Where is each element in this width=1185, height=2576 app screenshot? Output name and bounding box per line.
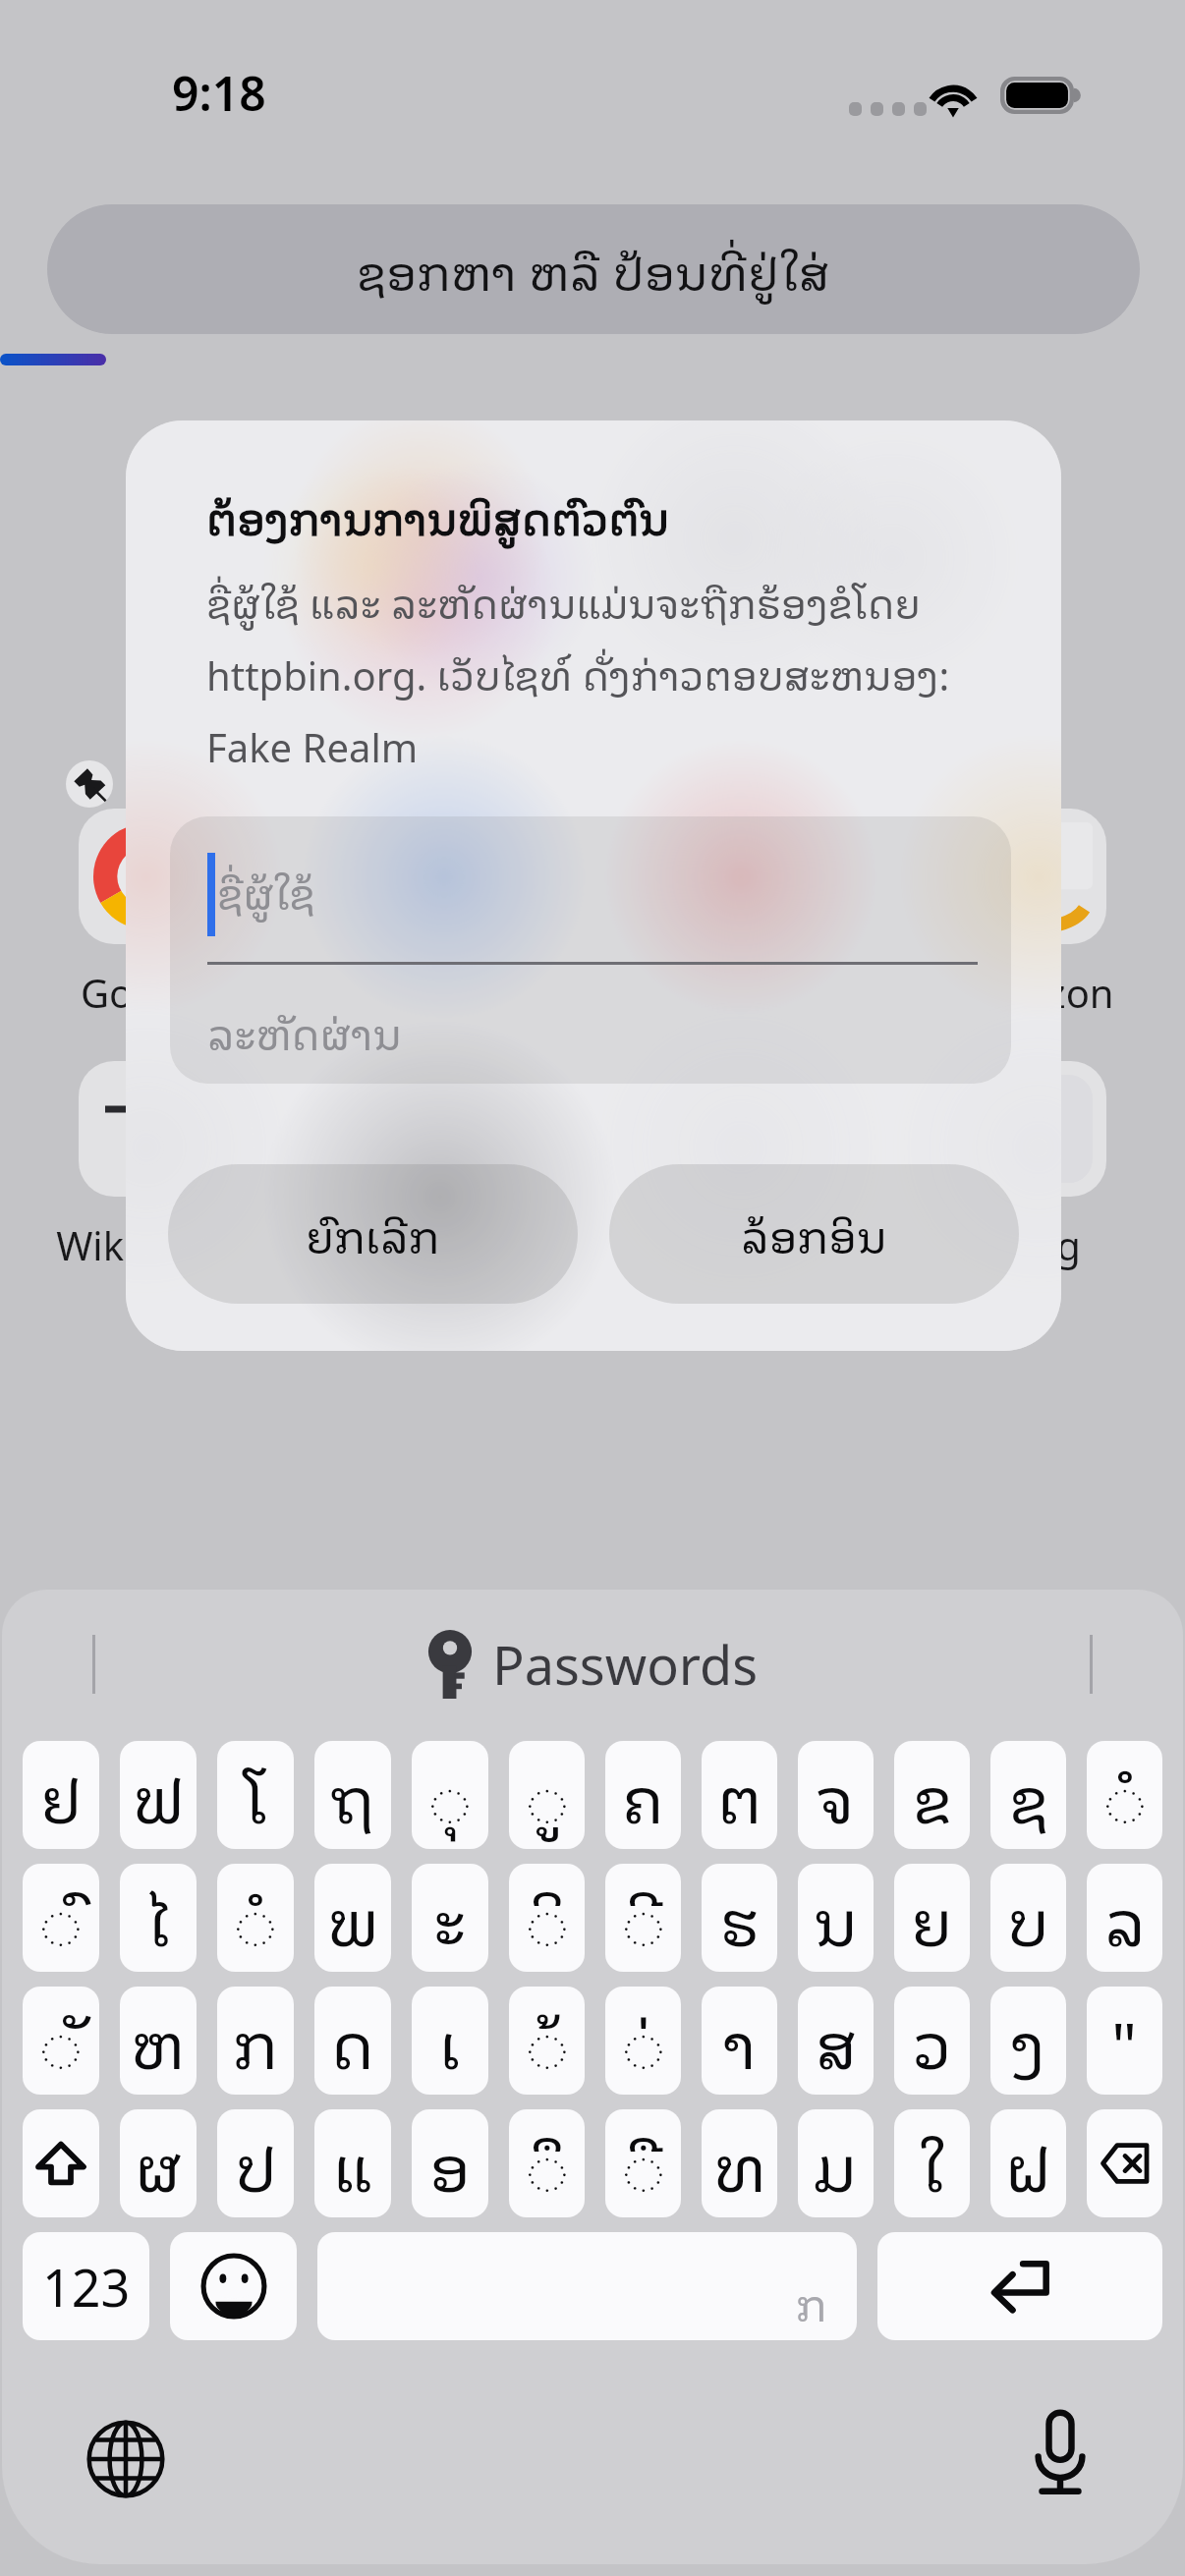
button[interactable]: ◌ັ: [23, 1987, 99, 2095]
staticText: ະ: [433, 1868, 467, 1968]
staticText: ຮ: [720, 1868, 760, 1968]
button[interactable]: ◌ຶ: [509, 2109, 585, 2217]
button[interactable]: ໂ: [217, 1741, 294, 1849]
button[interactable]: Shift: [23, 2109, 99, 2217]
button[interactable]: ◌ີ: [605, 1864, 681, 1972]
staticText: ປ: [235, 2113, 277, 2213]
staticText: ◌ໍ: [235, 1868, 276, 1968]
button[interactable]: Switch keyboard: [74, 2407, 178, 2511]
staticText: ລະຫັດຜ່ານ: [207, 998, 402, 1064]
staticText: ໄ: [145, 1868, 171, 1968]
button[interactable]: ງ: [990, 1987, 1066, 2095]
button[interactable]: ຮ: [702, 1864, 777, 1972]
staticText: ທ: [713, 2113, 766, 2213]
staticText: ຫ: [131, 1990, 186, 2091]
button[interactable]: ຄ: [605, 1741, 681, 1849]
button[interactable]: ຝ: [990, 2109, 1066, 2217]
button[interactable]: ຜ: [120, 2109, 197, 2217]
button[interactable]: ": [1087, 1987, 1162, 2095]
staticText: ຊອກຫາ ຫລື ປ້ອນທີ່ຢູ່ໃສ່: [357, 232, 830, 308]
staticText: ວ: [913, 1990, 952, 2091]
button[interactable]: ອ: [412, 2109, 488, 2217]
staticText: ຍົກເລີກ: [306, 1200, 440, 1268]
staticText: ຄ: [622, 1745, 664, 1845]
button[interactable]: ◌ິ: [509, 1864, 585, 1972]
button[interactable]: ເ: [412, 1987, 488, 2095]
button[interactable]: ຕ: [702, 1741, 777, 1849]
staticText: ◌ື: [623, 2113, 664, 2213]
button[interactable]: Emoji: [170, 2232, 297, 2340]
staticText: 9:18: [172, 61, 266, 125]
button[interactable]: ຊື່ຜູ້ໃຊ້: [207, 826, 984, 962]
button[interactable]: Space: [317, 2232, 857, 2340]
button[interactable]: Return: [877, 2232, 1162, 2340]
button[interactable]: ◌ໍ: [1087, 1741, 1162, 1849]
button[interactable]: ວ: [894, 1987, 970, 2095]
button[interactable]: ະ: [412, 1864, 488, 1972]
button[interactable]: ພ: [314, 1864, 391, 1972]
staticText: ◌ຶ: [527, 2113, 568, 2213]
button[interactable]: ຖ: [314, 1741, 391, 1849]
button[interactable]: ຢ: [23, 1741, 99, 1849]
staticText: ຕ: [717, 1745, 762, 1845]
button[interactable]: Backspace: [1087, 2109, 1162, 2217]
staticText: ◌ໍ: [1104, 1745, 1146, 1845]
staticText: ◌ີ: [623, 1868, 664, 1968]
button[interactable]: ◌້: [509, 1987, 585, 2095]
staticText: ຢ: [40, 1745, 83, 1845]
button[interactable]: ແ: [314, 2109, 391, 2217]
staticText: ຕ້ອງການການພິສູດຕົວຕົນ: [206, 481, 670, 550]
staticText: ແ: [333, 2113, 373, 2213]
staticText: ": [1111, 1990, 1138, 2091]
staticText: ກ: [233, 1990, 279, 2091]
staticText: າ: [723, 1990, 757, 2091]
button[interactable]: Dictation: [1008, 2401, 1112, 2505]
staticText: ຂ: [913, 1745, 952, 1845]
button[interactable]: ◌ູ: [509, 1741, 585, 1849]
button[interactable]: ຂ: [894, 1741, 970, 1849]
button[interactable]: ສ: [798, 1987, 874, 2095]
staticText: ຖ: [330, 1745, 375, 1845]
button[interactable]: ກ: [217, 1987, 294, 2095]
button[interactable]: ດ: [314, 1987, 391, 2095]
button[interactable]: ◌ຸ: [412, 1741, 488, 1849]
staticText: Twitter: [379, 1218, 509, 1271]
button[interactable]: ລ້ອກອິນ: [609, 1164, 1019, 1304]
staticText: Wikipedia: [56, 1218, 237, 1271]
button[interactable]: າ: [702, 1987, 777, 2095]
button[interactable]: ຊ: [990, 1741, 1066, 1849]
button[interactable]: ບ: [990, 1864, 1066, 1972]
staticText: ຟ: [133, 1745, 185, 1845]
staticText: Yahoo: [684, 1218, 799, 1271]
button[interactable]: ຍົກເລີກ: [168, 1164, 578, 1304]
staticText: ◌່: [623, 1990, 664, 2091]
staticText: ງ: [1011, 1990, 1046, 2091]
button[interactable]: ໃ: [894, 2109, 970, 2217]
button[interactable]: ຈ: [798, 1741, 874, 1849]
staticText: ◌ົ: [40, 1868, 82, 1968]
button[interactable]: ມ: [798, 2109, 874, 2217]
button[interactable]: ທ: [702, 2109, 777, 2217]
button[interactable]: ຊອກຫາ ຫລື ປ້ອນທີ່ຢູ່ໃສ່: [47, 204, 1140, 334]
staticText: ໂ: [242, 1745, 269, 1845]
button[interactable]: ◌ົ: [23, 1864, 99, 1972]
button[interactable]: 123: [23, 2232, 149, 2340]
staticText: ໃ: [919, 2113, 945, 2213]
staticText: ຍ: [911, 1868, 953, 1968]
button[interactable]: ນ: [798, 1864, 874, 1972]
button[interactable]: ຟ: [120, 1741, 197, 1849]
button[interactable]: ປ: [217, 2109, 294, 2217]
staticText: ຊື່ຜູ້ໃຊ້: [217, 858, 315, 924]
button[interactable]: ລະຫັດຜ່ານ: [207, 979, 984, 1077]
staticText: ◌ັ: [40, 1990, 82, 2091]
staticText: ສ: [816, 1990, 857, 2091]
button[interactable]: ລ: [1087, 1864, 1162, 1972]
button[interactable]: ◌ໍ: [217, 1864, 294, 1972]
staticText: ອ: [429, 2113, 471, 2213]
button[interactable]: ໄ: [120, 1864, 197, 1972]
button[interactable]: ຫ: [120, 1987, 197, 2095]
button[interactable]: ◌ື: [605, 2109, 681, 2217]
button[interactable]: ◌່: [605, 1987, 681, 2095]
staticText: ເ: [439, 1990, 462, 2091]
button[interactable]: ຍ: [894, 1864, 970, 1972]
